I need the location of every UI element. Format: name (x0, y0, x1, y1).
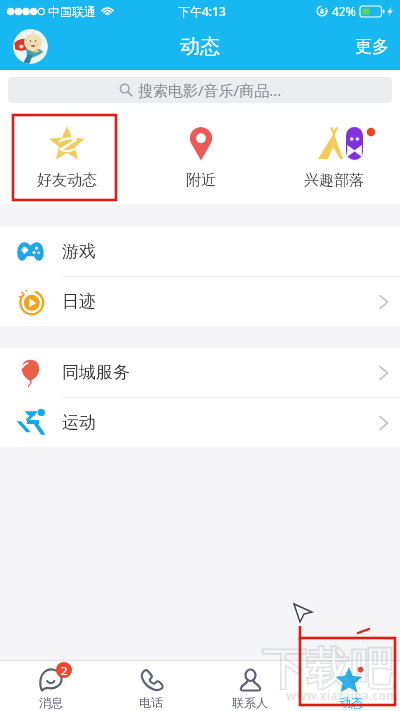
button[interactable]: 附近 (134, 111, 267, 204)
button[interactable]: 搜索电影/音乐/商品... (8, 77, 392, 103)
staticText: 中国联通 (48, 4, 96, 19)
staticText: 消息 (39, 695, 63, 710)
staticText: 搜索电影/音乐/商品... (138, 80, 282, 100)
staticText: 日迹 (62, 291, 96, 312)
button[interactable]: 2 (0, 661, 100, 711)
staticText: 动态 (339, 695, 363, 710)
button[interactable]: 更多 (339, 22, 400, 70)
staticText: 电话 (139, 695, 163, 710)
button[interactable]: 运动 (0, 398, 400, 447)
staticText: 联系人 (232, 695, 268, 710)
button[interactable]: 兴趣部落 (267, 111, 400, 204)
staticText: 运动 (62, 412, 96, 433)
button[interactable]: 日迹 (0, 277, 400, 326)
staticText: 下午4:13 (178, 3, 226, 19)
staticText: 下载吧 (262, 642, 394, 697)
staticText: 动态 (180, 34, 220, 59)
button[interactable]: 电话 (100, 661, 200, 711)
staticText: 2 (61, 663, 68, 678)
button[interactable]: 同城服务 (0, 348, 400, 397)
staticText: 42% (332, 3, 356, 19)
button[interactable]: Profile avatar (13, 29, 48, 64)
staticText: www.xiazaiba.com (286, 687, 398, 703)
button[interactable]: 好友动态 (0, 111, 134, 204)
staticText: 同城服务 (62, 362, 130, 383)
staticText: 游戏 (62, 241, 96, 262)
staticText: 更多 (355, 36, 389, 57)
staticText: 兴趣部落 (304, 171, 364, 190)
button[interactable]: 游戏 (0, 227, 400, 276)
staticText: 附近 (186, 171, 216, 190)
button[interactable]: 动态 (300, 661, 400, 711)
button[interactable]: 联系人 (200, 661, 300, 711)
staticText: 好友动态 (37, 171, 97, 190)
